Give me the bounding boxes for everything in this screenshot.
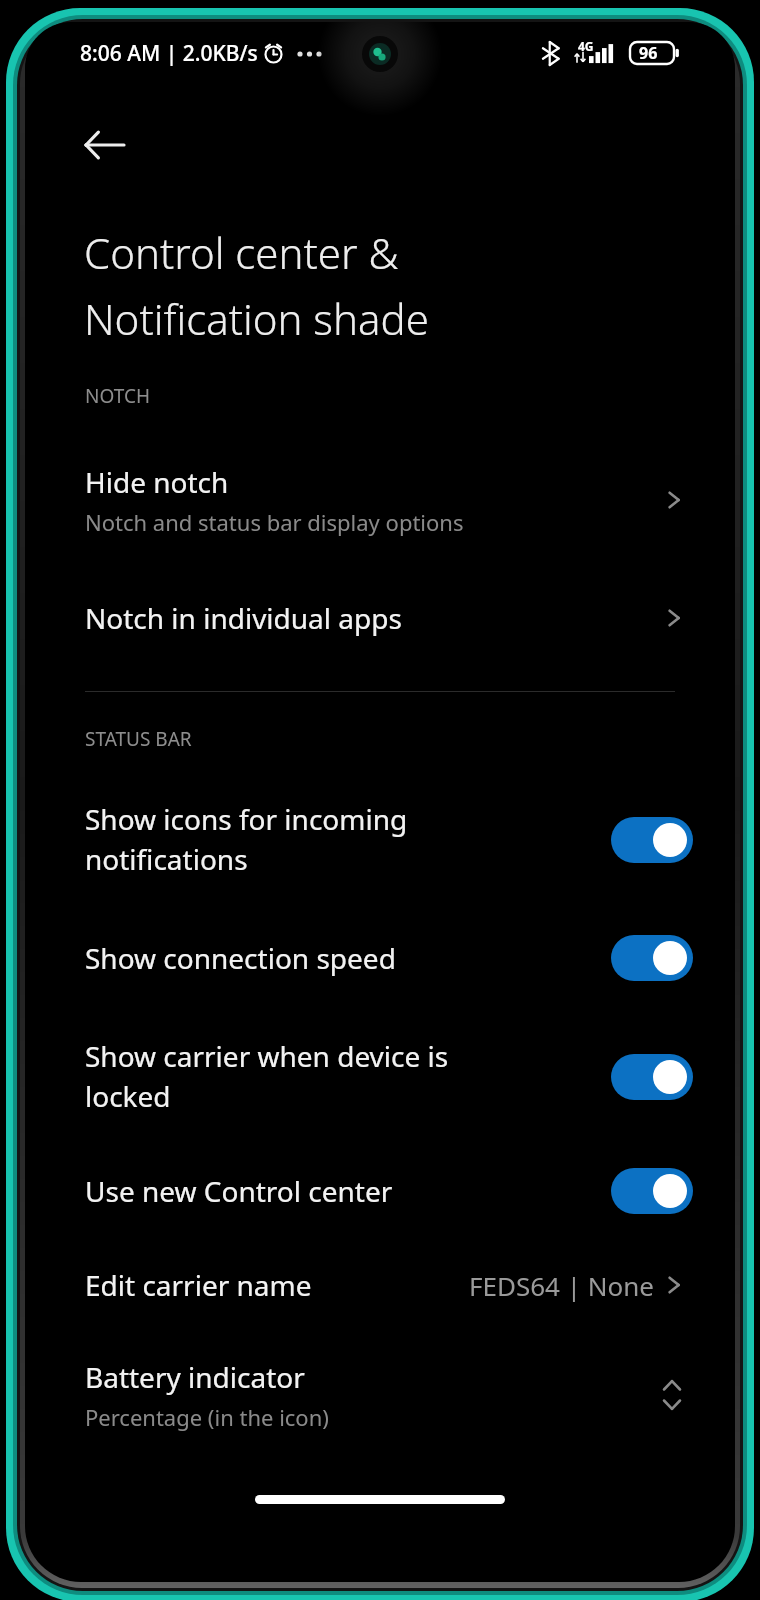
button[interactable]: Show connection speed bbox=[25, 931, 735, 985]
staticText: Show carrier when device is locked bbox=[85, 1037, 591, 1116]
button[interactable]: Notch in individual apps bbox=[25, 595, 735, 641]
other: Change battery indicator bbox=[657, 1372, 687, 1418]
staticText: Notch and status bar display options bbox=[85, 507, 464, 537]
staticText: 96 bbox=[639, 42, 658, 64]
staticText: STATUS BAR bbox=[85, 726, 192, 752]
staticText: FEDS64 | None bbox=[469, 1268, 655, 1303]
button[interactable]: Edit carrier name bbox=[25, 1262, 735, 1308]
button[interactable]: Toggle on bbox=[611, 935, 693, 981]
staticText: NOTCH bbox=[85, 383, 150, 409]
button[interactable]: Use new Control center bbox=[25, 1164, 735, 1218]
staticText: Notch in individual apps bbox=[85, 599, 661, 637]
button[interactable]: Toggle on bbox=[611, 1168, 693, 1214]
button[interactable]: Hide notch bbox=[25, 459, 735, 541]
staticText: Show icons for incoming notifications bbox=[85, 800, 591, 879]
button[interactable]: Show carrier when device is locked bbox=[25, 1033, 735, 1120]
button[interactable]: Back bbox=[65, 106, 143, 184]
staticText: Control center & Notification shade bbox=[84, 224, 429, 347]
button[interactable]: Toggle on bbox=[611, 817, 693, 863]
staticText: Use new Control center bbox=[85, 1172, 591, 1210]
button[interactable]: Show icons for incoming notifications bbox=[25, 796, 735, 883]
staticText: Hide notch bbox=[85, 463, 229, 501]
staticText: Edit carrier name bbox=[85, 1266, 469, 1304]
button[interactable]: Battery indicator bbox=[25, 1354, 735, 1436]
staticText: Show connection speed bbox=[85, 939, 591, 977]
staticText: 4G bbox=[578, 38, 594, 54]
staticText: Battery indicator bbox=[85, 1358, 305, 1396]
staticText: Percentage (in the icon) bbox=[85, 1402, 329, 1432]
button[interactable]: Toggle on bbox=[611, 1054, 693, 1100]
staticText: 8:06 AM | 2.0KB/s bbox=[80, 39, 258, 68]
